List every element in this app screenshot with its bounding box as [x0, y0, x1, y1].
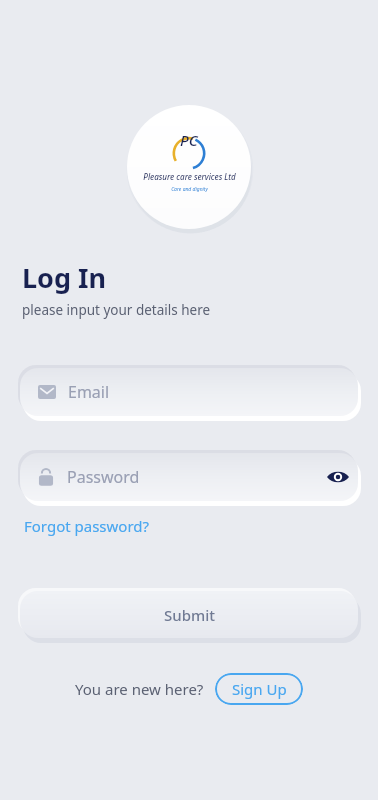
staticText: please input your details here — [22, 301, 211, 319]
button[interactable]: Email input field — [20, 368, 358, 416]
staticText: Submit — [164, 605, 215, 625]
button[interactable]: Sign Up — [215, 673, 303, 705]
staticText: Forgot password? — [24, 516, 150, 536]
button[interactable]: Submit — [20, 591, 358, 638]
button[interactable]: Forgot password? — [22, 513, 152, 539]
button[interactable]: Password input field — [20, 453, 358, 501]
staticText: Password — [67, 466, 140, 488]
staticText: PC — [180, 130, 198, 150]
staticText: Log In — [22, 259, 107, 296]
staticText: You are new here? — [75, 679, 204, 699]
staticText: Pleasure care services Ltd — [143, 171, 236, 182]
staticText: Sign Up — [232, 679, 287, 699]
staticText: Care and dignity — [171, 186, 208, 193]
button[interactable]: Show password — [318, 457, 358, 497]
staticText: Email — [68, 381, 110, 403]
